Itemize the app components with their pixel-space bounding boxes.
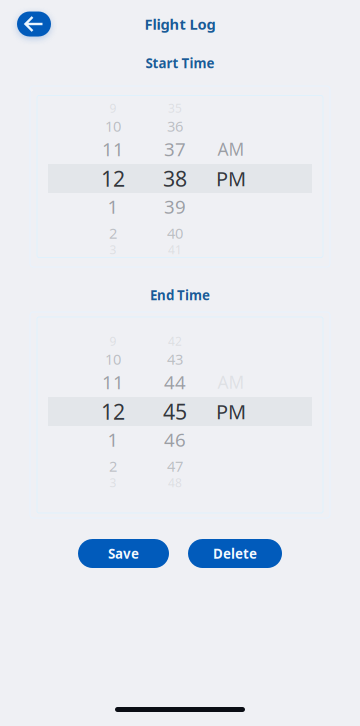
button[interactable]: Back — [13, 4, 55, 44]
staticText: 46 — [164, 427, 186, 452]
button[interactable]: Time picker — [37, 95, 323, 257]
staticText: 39 — [164, 194, 186, 219]
button[interactable]: Save — [78, 539, 169, 568]
staticText: 10 — [105, 349, 121, 369]
staticText: 40 — [167, 223, 183, 243]
staticText: 38 — [163, 164, 187, 193]
staticText: 12 — [101, 397, 125, 426]
staticText: PM — [216, 165, 246, 192]
staticText: Start Time — [145, 54, 214, 72]
staticText: AM — [217, 370, 244, 393]
staticText: Flight Log — [144, 14, 215, 34]
staticText: AM — [217, 137, 244, 160]
staticText: 11 — [102, 370, 124, 394]
staticText: 42 — [168, 333, 182, 349]
button[interactable]: Time picker — [37, 317, 323, 513]
staticText: 10 — [105, 116, 121, 136]
staticText: 37 — [164, 137, 186, 161]
staticText: 2 — [109, 223, 117, 243]
staticText: 3 — [109, 241, 116, 257]
button[interactable]: Delete — [188, 539, 282, 568]
staticText: 43 — [167, 349, 183, 369]
staticText: 11 — [102, 137, 124, 161]
staticText: Delete — [213, 545, 257, 562]
staticText: 44 — [164, 370, 186, 394]
staticText: 36 — [167, 116, 183, 136]
staticText: 2 — [109, 456, 117, 476]
staticText: 47 — [167, 456, 183, 476]
staticText: 1 — [107, 427, 118, 452]
staticText: 45 — [163, 397, 187, 426]
staticText: 1 — [107, 194, 118, 219]
staticText: 41 — [168, 241, 182, 257]
staticText: 3 — [109, 474, 116, 490]
staticText: PM — [216, 398, 246, 425]
staticText: 48 — [168, 474, 182, 490]
staticText: 9 — [109, 333, 116, 349]
staticText: End Time — [150, 286, 210, 304]
staticText: 12 — [101, 164, 125, 193]
staticText: 9 — [109, 100, 116, 116]
staticText: Save — [108, 545, 139, 562]
staticText: 35 — [168, 100, 182, 116]
